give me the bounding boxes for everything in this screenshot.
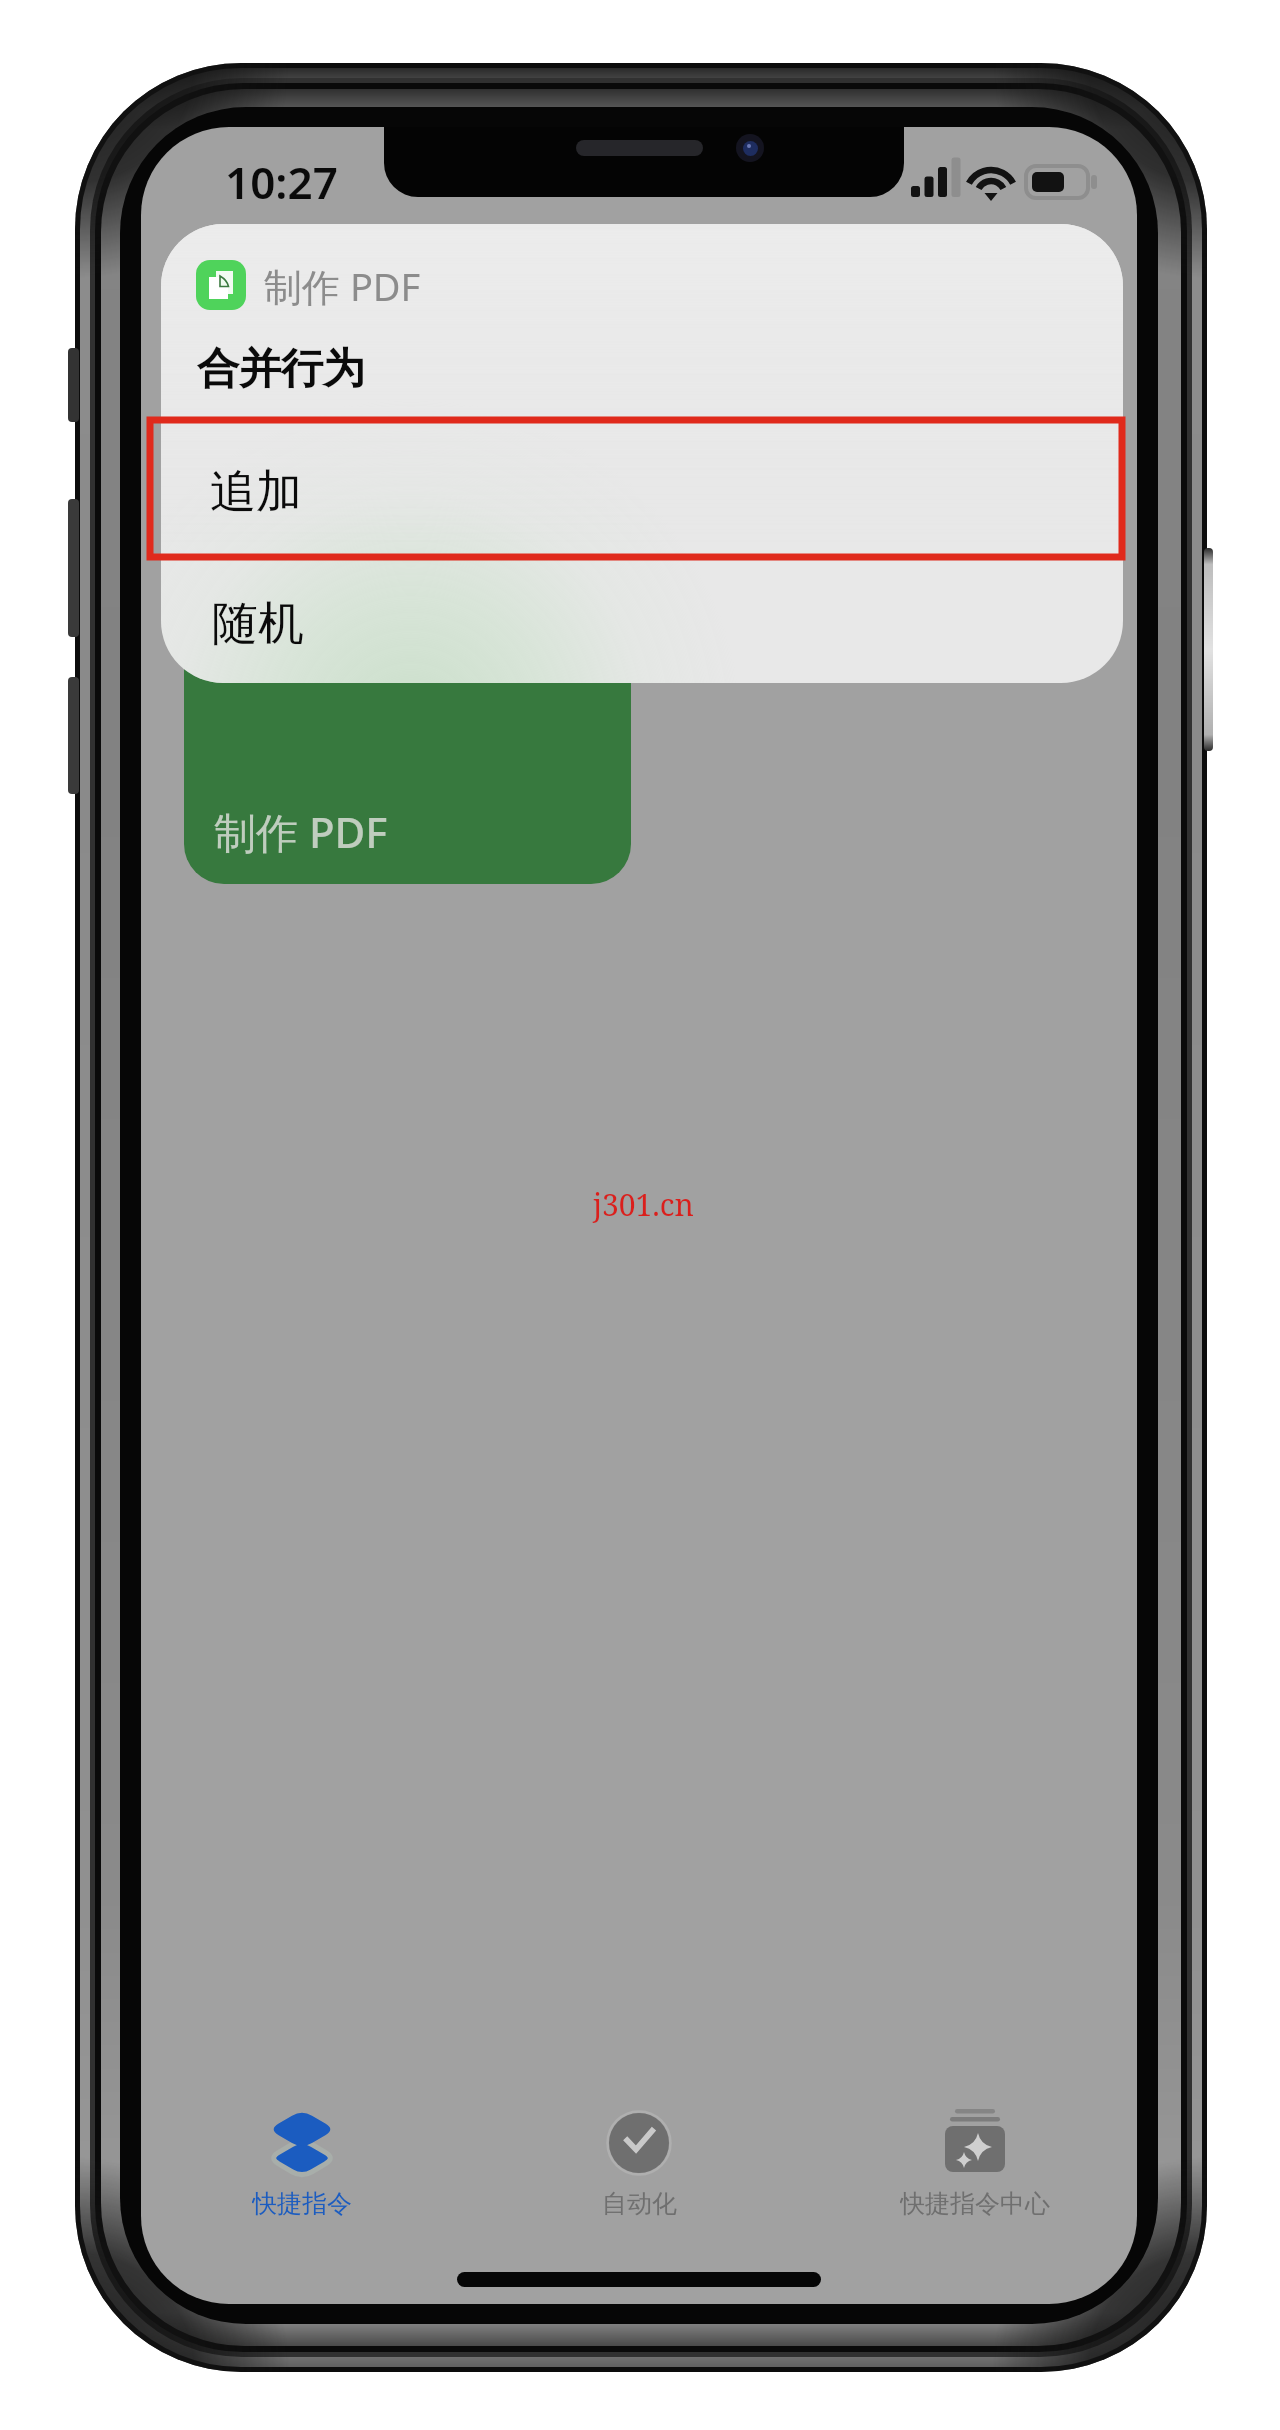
button[interactable]: 自动化	[489, 2107, 789, 2217]
staticText: 合并行为	[197, 343, 365, 396]
staticText: 制作 PDF	[264, 260, 421, 310]
staticText: 随机	[212, 595, 304, 653]
staticText: 追加	[210, 463, 302, 521]
button[interactable]: 追加	[161, 460, 1123, 524]
staticText: 快捷指令中心	[900, 2188, 1050, 2217]
button[interactable]: 快捷指令中心	[825, 2107, 1125, 2217]
button[interactable]: 合并行为	[161, 337, 1123, 401]
staticText: 自动化	[602, 2188, 677, 2217]
staticText: 10:27	[225, 152, 338, 212]
button[interactable]: 随机	[161, 592, 1123, 656]
button[interactable]: 快捷指令	[152, 2107, 452, 2217]
staticText: 制作 PDF	[214, 803, 388, 860]
button[interactable]: 制作 PDF	[184, 627, 631, 884]
staticText: j301.cn	[593, 1184, 694, 1225]
staticText: 快捷指令	[252, 2188, 352, 2217]
